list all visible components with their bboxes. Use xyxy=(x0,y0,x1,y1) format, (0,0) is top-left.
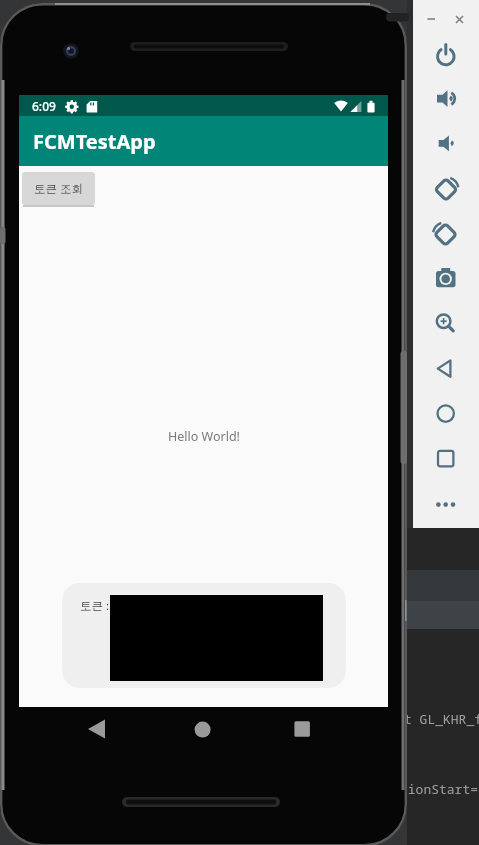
button[interactable]: 토큰 조회 xyxy=(22,172,95,205)
staticText: t GL_KHR_f xyxy=(404,710,479,728)
button[interactable] xyxy=(289,716,319,746)
button[interactable] xyxy=(430,353,461,384)
button[interactable] xyxy=(430,174,461,205)
button[interactable] xyxy=(188,716,218,746)
staticText: 토큰 : xyxy=(80,598,110,614)
staticText: 6:09 xyxy=(32,98,56,114)
button[interactable] xyxy=(430,443,461,474)
button[interactable] xyxy=(430,218,461,249)
button[interactable] xyxy=(430,129,461,160)
button[interactable] xyxy=(430,262,461,293)
button[interactable] xyxy=(430,398,461,429)
button[interactable] xyxy=(430,41,461,72)
staticText: Hello World! xyxy=(168,428,240,445)
button[interactable] xyxy=(430,307,461,338)
staticText: FCMTestApp xyxy=(33,128,156,155)
staticText: 토큰 조회 xyxy=(34,181,83,197)
button[interactable] xyxy=(85,716,115,746)
button[interactable] xyxy=(430,84,461,115)
button[interactable] xyxy=(430,489,461,520)
staticText: lionStart= xyxy=(400,780,479,798)
